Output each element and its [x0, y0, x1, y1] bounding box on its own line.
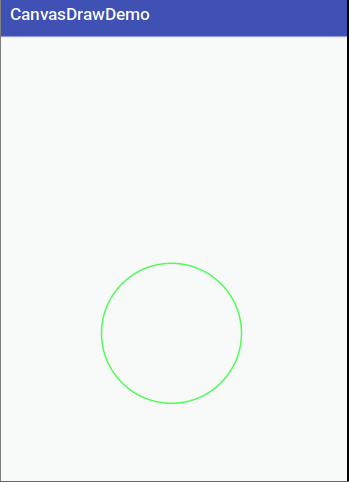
button[interactable]: Drawing canvas: [1, 36, 347, 481]
staticText: CanvasDrawDemo: [10, 4, 150, 24]
